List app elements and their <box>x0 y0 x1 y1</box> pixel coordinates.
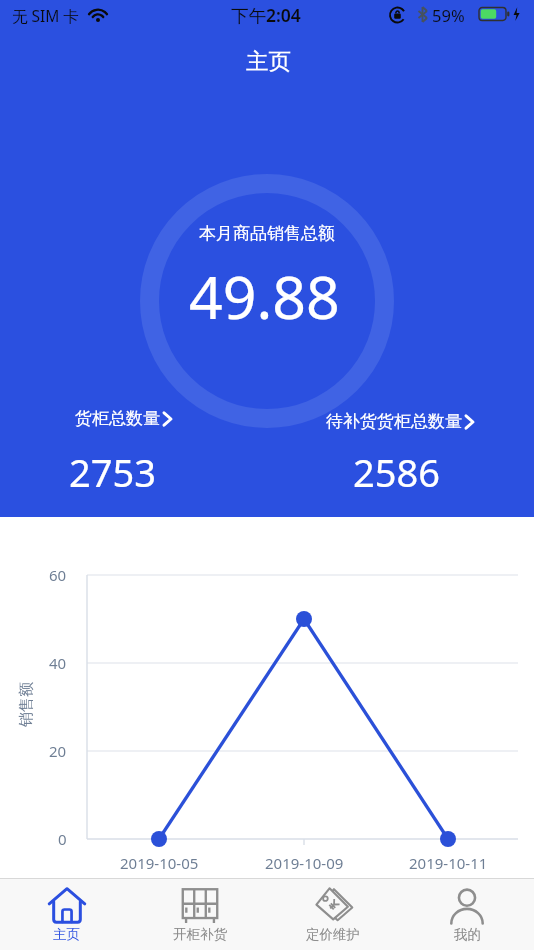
staticText: 2019-10-09 <box>265 853 344 873</box>
staticText: 下午2:04 <box>231 3 301 27</box>
staticText: 2753 <box>69 446 156 498</box>
button[interactable]: 开柜补货 <box>133 879 266 950</box>
staticText: 无 SIM 卡 <box>12 5 79 26</box>
staticText: 主页 <box>246 47 291 75</box>
staticText: 49.88 <box>189 256 340 326</box>
staticText: 我的 <box>454 926 481 943</box>
button[interactable]: 待补货货柜总数量 <box>315 400 487 500</box>
staticText: 60 <box>49 565 67 585</box>
staticText: 本月商品销售总额 <box>199 223 335 244</box>
button[interactable]: 定价维护 <box>266 879 400 950</box>
button[interactable]: 主页 <box>0 879 133 950</box>
staticText: 0 <box>58 829 67 849</box>
staticText: 开柜补货 <box>173 926 227 943</box>
staticText: 40 <box>49 653 67 673</box>
staticText: 货柜总数量 <box>75 408 160 429</box>
staticText: 59% <box>432 4 465 26</box>
button[interactable]: 我的 <box>400 879 534 950</box>
staticText: 定价维护 <box>306 926 360 943</box>
staticText: 销售额 <box>17 682 36 727</box>
staticText: 2019-10-11 <box>409 853 488 873</box>
staticText: 待补货货柜总数量 <box>326 411 462 432</box>
staticText: 2586 <box>353 446 440 498</box>
staticText: 20 <box>49 741 67 761</box>
staticText: 主页 <box>53 926 80 943</box>
staticText: 2019-10-05 <box>120 853 199 873</box>
button[interactable]: 货柜总数量 <box>40 400 210 500</box>
